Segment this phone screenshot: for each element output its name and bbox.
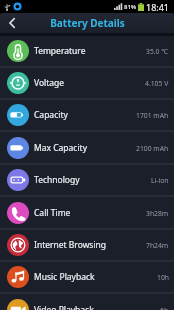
button[interactable]: Video Playback — [0, 295, 174, 310]
staticText: Technology — [34, 174, 80, 186]
button[interactable]: Internet Browsing — [0, 230, 174, 260]
staticText: 4.105 V — [145, 79, 169, 88]
staticText: 7h24m — [146, 241, 169, 250]
staticText: Battery Details — [50, 16, 125, 30]
staticText: Call Time — [34, 207, 71, 219]
staticText: Voltage — [34, 77, 65, 89]
button[interactable]: Music Playback — [0, 262, 174, 292]
staticText: Capacity — [34, 109, 68, 121]
staticText: 3h28m — [146, 209, 169, 218]
staticText: Video Playback — [34, 304, 94, 310]
button[interactable]: Capacity — [0, 100, 174, 130]
staticText: Max Capacity — [34, 142, 87, 154]
staticText: 1701 mAh — [136, 111, 169, 120]
button[interactable]: Temperature — [0, 36, 174, 66]
staticText: 10h — [157, 273, 169, 282]
staticText: Internet Browsing — [34, 239, 107, 251]
staticText: 35.0 ℃ — [146, 47, 169, 56]
staticText: Temperature — [34, 45, 86, 57]
button[interactable]: Technology — [0, 165, 174, 195]
button[interactable]: Back — [0, 13, 24, 33]
button[interactable]: Voltage — [0, 68, 174, 98]
staticText: 2100 mAh — [136, 144, 169, 153]
staticText: Li-ion — [151, 176, 169, 185]
staticText: Music Playback — [34, 271, 95, 283]
button[interactable]: Call Time — [0, 198, 174, 228]
staticText: 81% — [124, 3, 137, 11]
button[interactable]: Max Capacity — [0, 133, 174, 163]
staticText: 6h — [160, 306, 169, 310]
staticText: 18:41 — [146, 1, 170, 13]
